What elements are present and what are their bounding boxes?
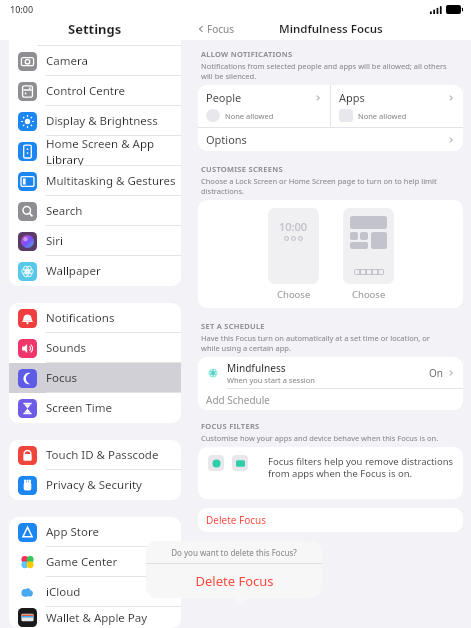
button[interactable]: Multitasking & Gestures — [9, 166, 181, 196]
button[interactable]: Notifications — [9, 303, 181, 333]
staticText: CUSTOMISE SCREENS — [201, 164, 283, 174]
staticText: Touch ID & Passcode — [46, 447, 159, 463]
staticText: Delete Focus — [206, 513, 267, 527]
button[interactable]: App Store — [9, 517, 181, 547]
button[interactable]: Mindfulness — [198, 357, 463, 388]
button[interactable]: Screen Time — [9, 393, 181, 423]
staticText: Mindfulness — [227, 361, 286, 375]
button[interactable]: Focus — [9, 363, 181, 393]
staticText: None allowed — [358, 111, 407, 121]
staticText: Game Center — [46, 554, 118, 570]
staticText: 10:00 — [10, 3, 34, 15]
staticText: Display & Brightness — [46, 113, 158, 129]
button[interactable]: Apps — [331, 85, 463, 127]
staticText: Siri — [46, 233, 63, 249]
button[interactable]: iCloud — [9, 577, 181, 607]
button[interactable]: Delete Focus — [198, 508, 463, 532]
staticText: Choose — [277, 288, 311, 301]
staticText: Focus filters help you remove distractio… — [268, 455, 454, 480]
staticText: Camera — [46, 53, 88, 69]
staticText: Notifications — [46, 310, 115, 326]
button[interactable]: Control Centre — [9, 76, 181, 106]
button[interactable]: Touch ID & Passcode — [9, 440, 181, 470]
button[interactable]: Privacy & Security — [9, 470, 181, 500]
button[interactable]: Home Screen & App Library — [9, 136, 181, 166]
staticText: Choose a Lock Screen or Home Screen page… — [201, 176, 437, 196]
staticText: Delete Focus — [195, 572, 274, 590]
staticText: 10:00 — [279, 219, 308, 234]
button[interactable]: Siri — [9, 226, 181, 256]
button[interactable]: People — [198, 85, 330, 127]
staticText: People — [206, 90, 242, 105]
staticText: Add Schedule — [206, 393, 270, 407]
button[interactable]: Delete Focus — [146, 564, 322, 598]
button[interactable]: Game Center — [9, 547, 181, 577]
staticText: Wallpaper — [46, 263, 101, 279]
staticText: Do you want to delete this Focus? — [171, 547, 297, 558]
staticText: Choose — [352, 288, 386, 301]
staticText: SET A SCHEDULE — [201, 321, 265, 331]
button[interactable]: Choose — [343, 208, 394, 301]
staticText: Home Screen & App Library — [46, 136, 181, 166]
staticText: Apps — [339, 90, 365, 105]
staticText: Settings — [68, 20, 122, 38]
staticText: Have this Focus turn on automatically at… — [201, 333, 430, 353]
button[interactable]: Wallpaper — [9, 256, 181, 286]
button[interactable]: Camera — [9, 46, 181, 76]
staticText: Options — [206, 132, 247, 147]
staticText: Control Centre — [46, 83, 125, 99]
button[interactable]: Focus — [195, 20, 237, 38]
staticText: App Store — [46, 524, 99, 540]
staticText: Wallet & Apple Pay — [46, 610, 148, 626]
staticText: Privacy & Security — [46, 477, 142, 493]
staticText: Multitasking & Gestures — [46, 173, 176, 189]
button[interactable]: Display & Brightness — [9, 106, 181, 136]
staticText: Notifications from selected people and a… — [201, 61, 447, 81]
staticText: Mindfulness Focus — [279, 21, 383, 37]
button[interactable]: Options — [198, 128, 463, 151]
button[interactable]: Sounds — [9, 333, 181, 363]
button[interactable]: Wallet & Apple Pay — [9, 607, 181, 628]
staticText: iCloud — [46, 584, 81, 600]
staticText: Search — [46, 203, 83, 219]
staticText: On — [429, 366, 443, 380]
staticText: Sounds — [46, 340, 87, 356]
staticText: FOCUS FILTERS — [201, 421, 260, 431]
staticText: Customise how your apps and device behav… — [201, 433, 439, 443]
button[interactable]: Add Schedule — [198, 389, 463, 410]
staticText: None allowed — [225, 111, 274, 121]
staticText: Focus — [46, 370, 78, 386]
button[interactable]: 10:00 — [268, 208, 319, 301]
staticText: Focus — [207, 22, 235, 36]
staticText: When you start a session — [227, 375, 315, 385]
staticText: ALLOW NOTIFICATIONS — [201, 49, 293, 59]
staticText: Screen Time — [46, 400, 113, 416]
button[interactable]: Search — [9, 196, 181, 226]
